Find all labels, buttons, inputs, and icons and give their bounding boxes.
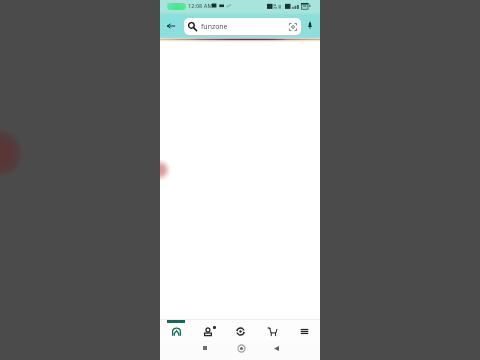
staticText: 12:08 AM <box>188 2 213 10</box>
button[interactable]: Account <box>192 319 224 340</box>
button[interactable]: Notifications <box>302 17 318 33</box>
button[interactable]: Cart <box>256 319 288 340</box>
button[interactable]: Home <box>233 340 249 356</box>
button[interactable]: Updates <box>224 319 256 340</box>
button[interactable]: Back <box>161 16 180 35</box>
button[interactable]: funzone <box>184 18 301 35</box>
button[interactable]: Back <box>268 340 284 356</box>
staticText: funzone <box>201 22 289 31</box>
button[interactable]: Menu <box>288 319 320 340</box>
button[interactable]: Home <box>160 319 192 340</box>
button[interactable]: Recents <box>197 340 213 356</box>
